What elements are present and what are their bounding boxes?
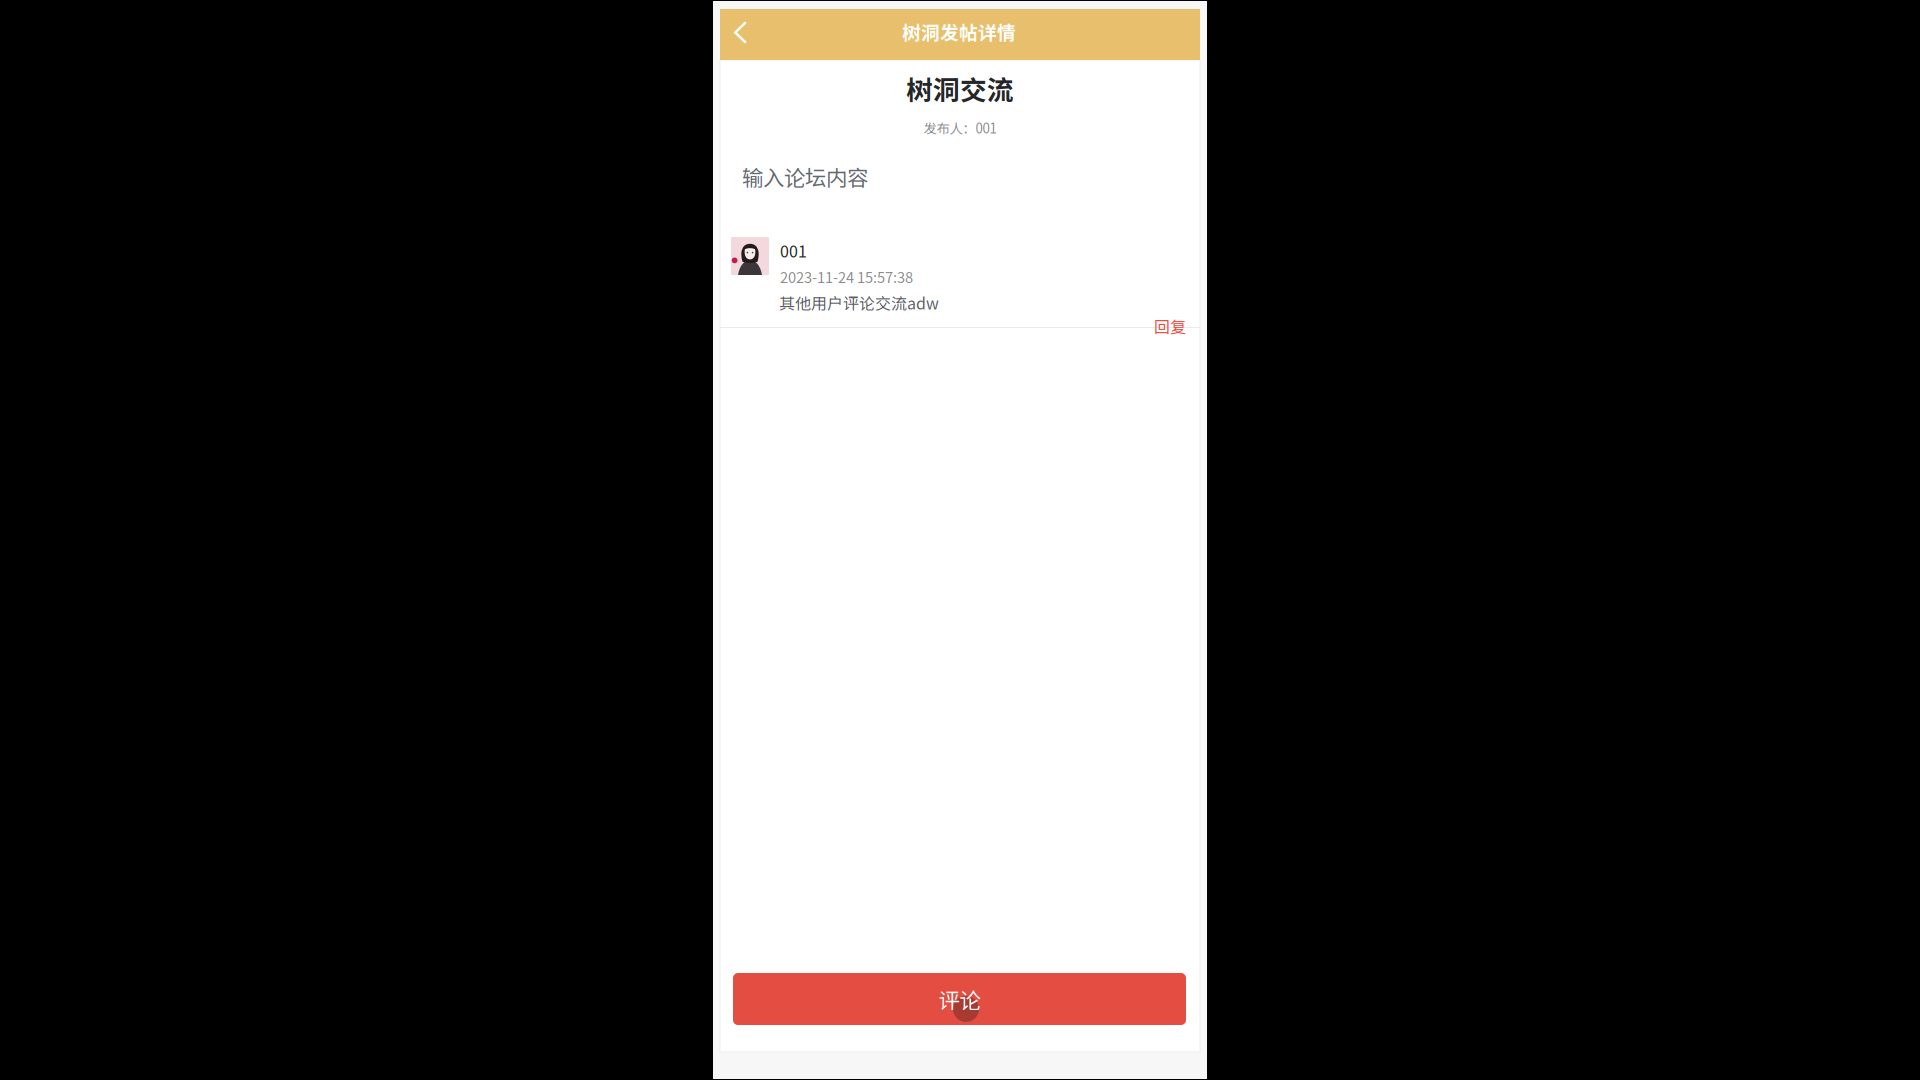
- staticText: 输入论坛内容: [742, 161, 868, 192]
- button[interactable]: 回复: [1142, 314, 1186, 338]
- staticText: 评论: [938, 984, 980, 1014]
- staticText: 树洞发帖详情: [902, 18, 1016, 45]
- staticText: 树洞交流: [906, 69, 1014, 108]
- staticText: 001: [780, 239, 807, 262]
- staticText: 回复: [1154, 314, 1186, 338]
- staticText: 2023-11-24 15:57:38: [780, 266, 913, 287]
- staticText: 其他用户评论交流adw: [779, 291, 939, 314]
- button[interactable]: 评论: [733, 973, 1186, 1025]
- button[interactable]: Back: [720, 9, 757, 60]
- staticText: 发布人：001: [923, 118, 996, 137]
